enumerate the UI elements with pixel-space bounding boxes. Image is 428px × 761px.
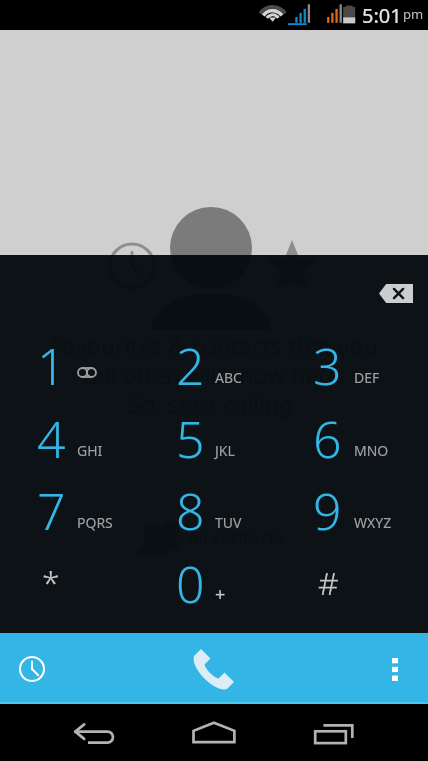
staticText: 4 xyxy=(37,405,66,473)
staticText: 5 xyxy=(176,405,205,473)
staticText: 6 xyxy=(313,405,342,473)
button[interactable]: 0 xyxy=(143,531,286,604)
button[interactable]: 4 xyxy=(0,386,143,459)
staticText: pm xyxy=(403,5,424,23)
button[interactable]: More options xyxy=(373,644,417,694)
staticText: PQRS xyxy=(77,513,113,532)
button[interactable]: 7 xyxy=(0,458,143,531)
staticText: 3 xyxy=(313,332,342,400)
button[interactable]: Recent apps xyxy=(304,716,364,756)
staticText: 1 xyxy=(37,332,66,400)
button[interactable]: Call xyxy=(184,639,244,699)
staticText: Favourites & contacts that you call ofte… xyxy=(0,330,428,420)
button[interactable]: Backspace xyxy=(376,278,416,308)
button[interactable]: Back xyxy=(65,716,125,756)
staticText: ABC xyxy=(215,368,242,387)
staticText: JKL xyxy=(215,441,235,460)
staticText: WXYZ xyxy=(354,513,392,532)
button[interactable]: 1 xyxy=(0,313,143,386)
button[interactable]: # xyxy=(285,531,428,604)
button[interactable]: 6 xyxy=(285,386,428,459)
staticText: # xyxy=(318,561,339,605)
staticText: GHI xyxy=(77,441,103,460)
button[interactable]: * xyxy=(0,531,143,604)
button[interactable]: 3 xyxy=(285,313,428,386)
staticText: All contacts xyxy=(187,525,284,550)
button[interactable]: 8 xyxy=(143,458,286,531)
staticText: * xyxy=(42,560,60,604)
staticText: 0 xyxy=(176,550,205,618)
button[interactable]: 5 xyxy=(143,386,286,459)
staticText: 2 xyxy=(176,332,205,400)
staticText: DEF xyxy=(354,368,380,387)
staticText: 9 xyxy=(313,477,342,545)
staticText: 8 xyxy=(176,477,205,545)
button[interactable]: 9 xyxy=(285,458,428,531)
button[interactable]: Call history xyxy=(10,644,54,694)
button[interactable]: 2 xyxy=(143,313,286,386)
staticText: 5:01 xyxy=(362,2,402,29)
staticText: + xyxy=(215,582,226,607)
staticText: TUV xyxy=(215,513,242,532)
button[interactable]: Home xyxy=(184,716,244,756)
staticText: MNO xyxy=(354,441,389,460)
staticText: 7 xyxy=(37,477,66,545)
